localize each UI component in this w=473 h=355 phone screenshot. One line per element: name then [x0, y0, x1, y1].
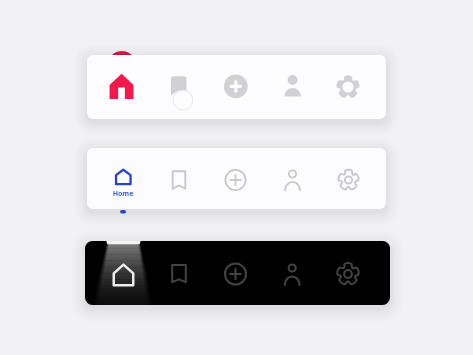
button[interactable]: Add [208, 55, 264, 119]
button[interactable]: Saved [151, 241, 207, 305]
button[interactable]: Settings [320, 55, 376, 119]
button[interactable]: Add [208, 148, 264, 209]
button[interactable]: Profile [264, 55, 320, 119]
button[interactable]: Settings [320, 241, 376, 305]
button[interactable]: Home [95, 241, 151, 305]
button[interactable]: Saved [151, 55, 207, 119]
button[interactable]: Add [208, 241, 264, 305]
button[interactable]: Home [95, 148, 151, 209]
button[interactable]: Home [95, 55, 151, 119]
button[interactable]: Settings [320, 148, 376, 209]
button[interactable]: Profile [264, 241, 320, 305]
button[interactable]: Saved [151, 148, 207, 209]
button[interactable]: Profile [264, 148, 320, 209]
staticText: Home [95, 189, 151, 199]
